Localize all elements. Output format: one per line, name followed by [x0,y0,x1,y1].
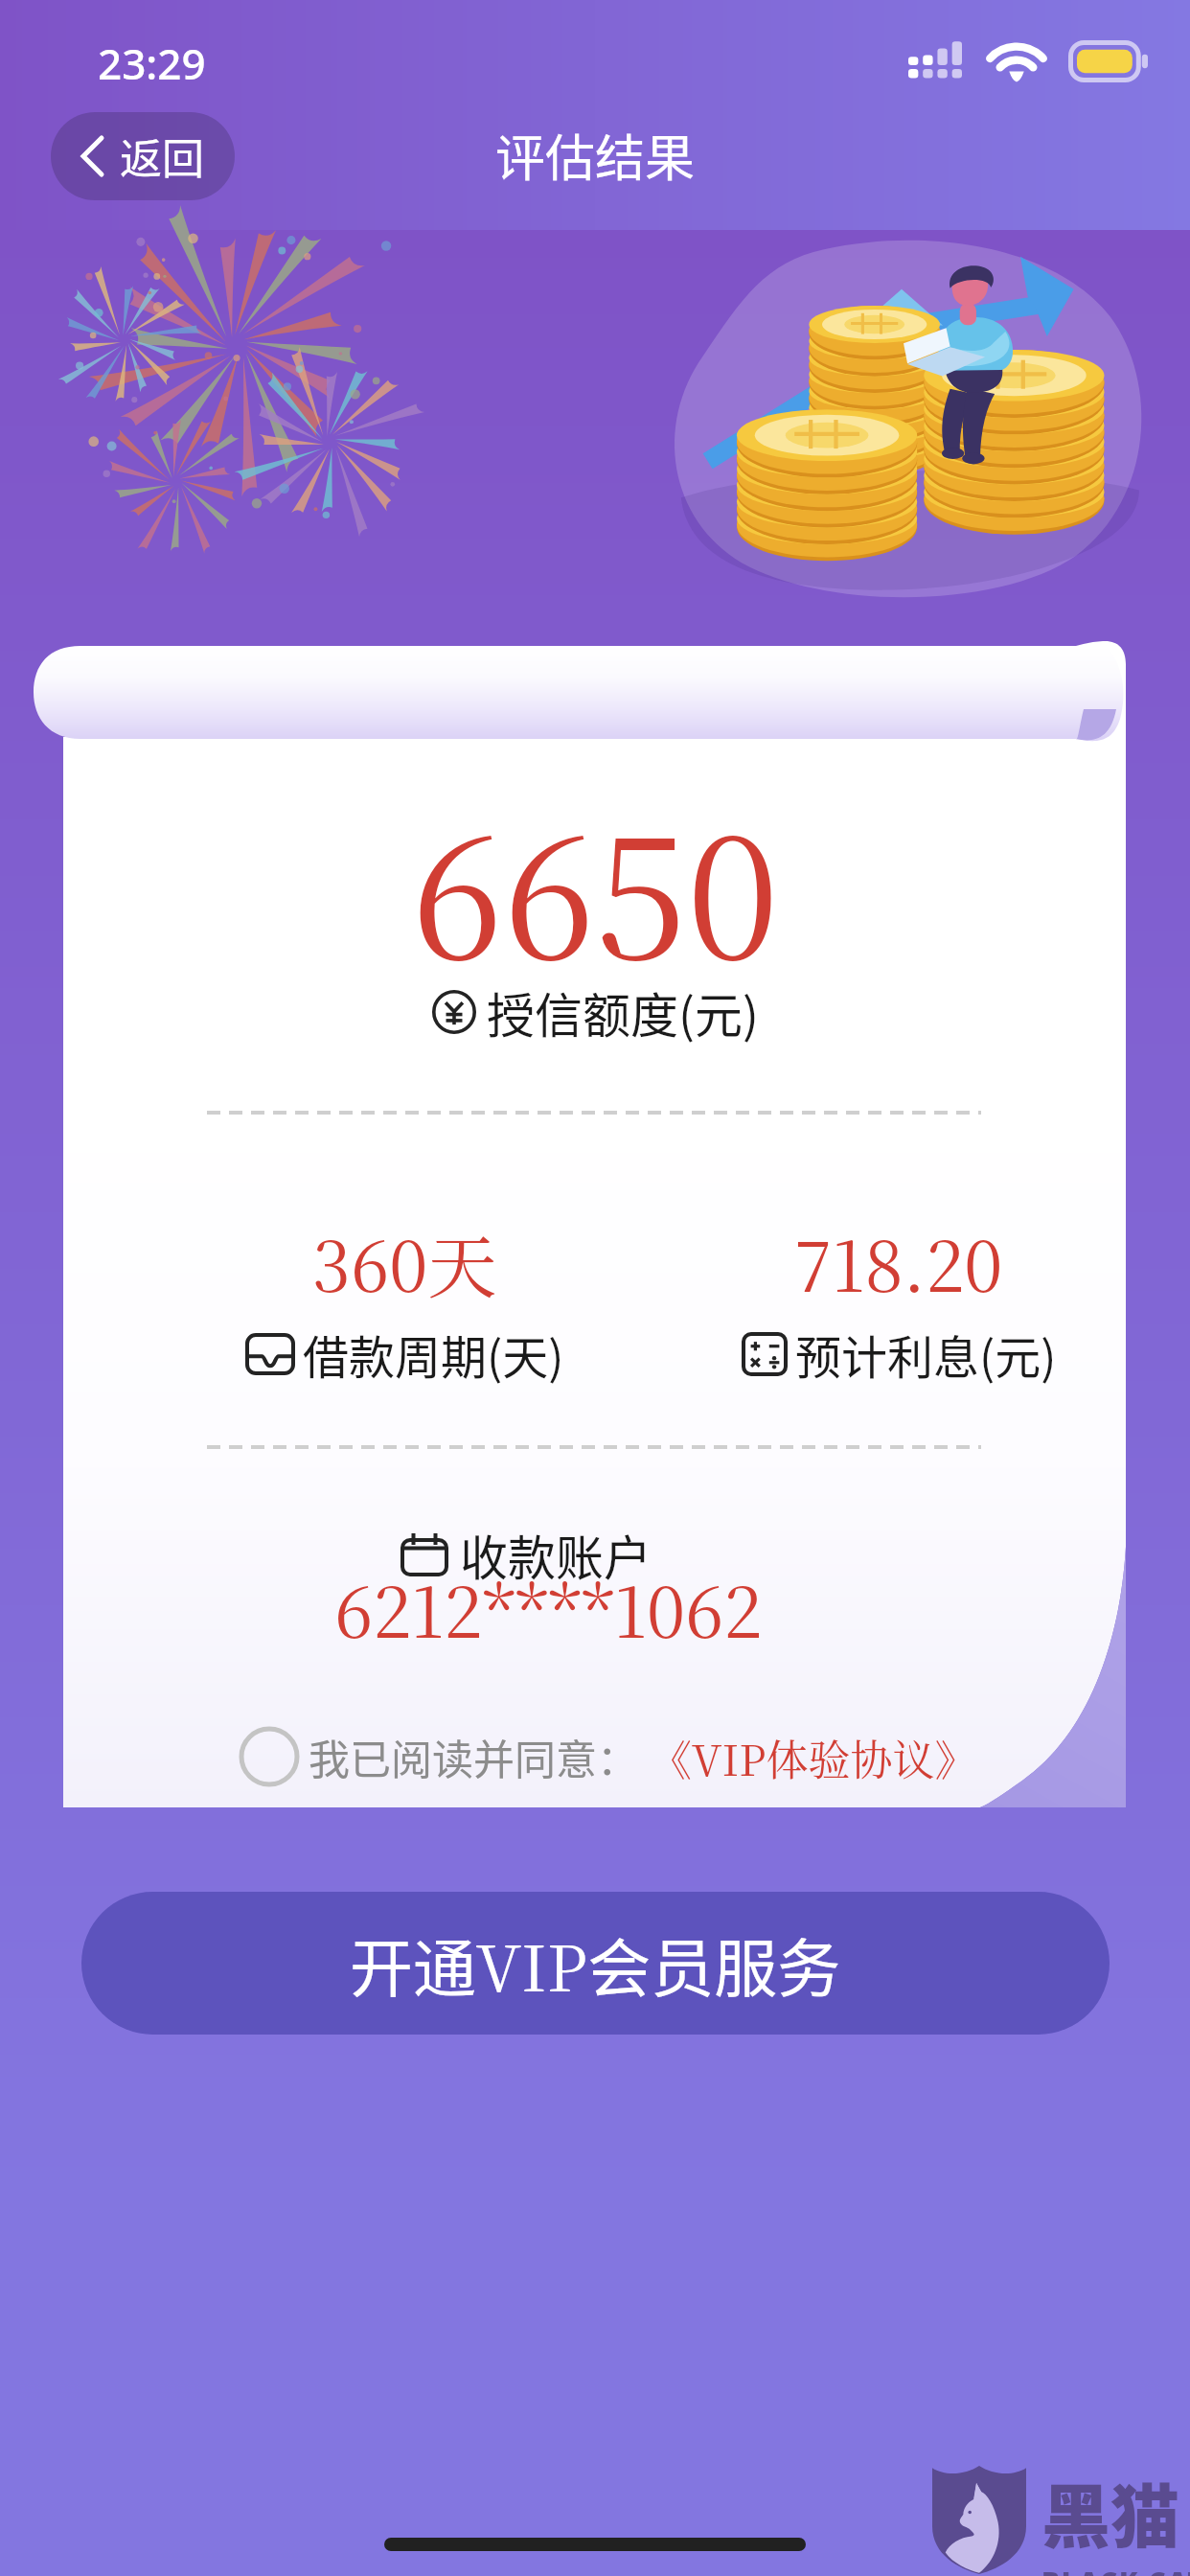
button[interactable]: 开通VIP会员服务 [81,1892,1110,2035]
staticText: 黑猫 [1041,2461,1180,2561]
staticText: 收款账户 [460,1520,652,1589]
staticText: 6212****1062 [334,1558,763,1657]
staticText: 评估结果 [495,119,696,191]
button[interactable]: 《VIP体验协议》 [650,1727,977,1787]
staticText: 718.20 [794,1212,1003,1311]
staticText: 授信额度(元) [487,977,759,1046]
staticText: 6650 [411,769,779,1005]
staticText: 我已阅读并同意： [309,1727,638,1786]
staticText: BLACK CAT [1041,2563,1190,2576]
staticText: 23:29 [98,34,206,92]
button[interactable]: Back [51,112,235,200]
staticText: 360天 [312,1212,497,1311]
staticText: 借款周期(天) [303,1321,564,1388]
staticText: 返回 [120,126,204,187]
staticText: 预计利息(元) [795,1321,1057,1388]
staticText: 开通VIP会员服务 [350,1918,841,2010]
button[interactable]: 我已阅读并同意： [238,1725,977,1788]
